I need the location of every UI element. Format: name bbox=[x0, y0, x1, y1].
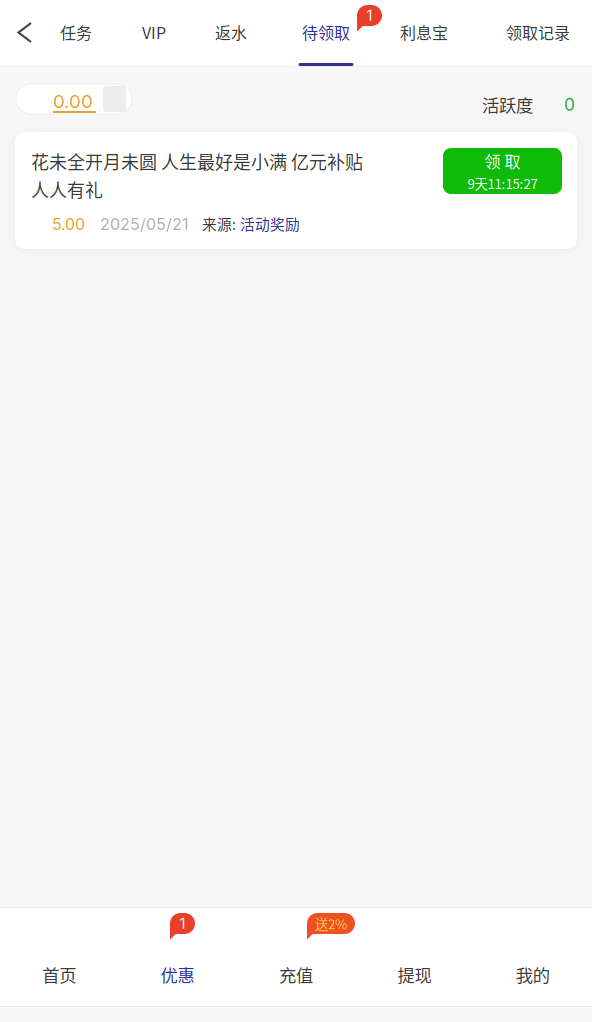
button[interactable]: 首页 bbox=[0, 907, 118, 1006]
staticText: 优惠 bbox=[161, 962, 195, 987]
button[interactable]: 利息宝 bbox=[389, 0, 459, 66]
button[interactable]: 提现 bbox=[355, 907, 474, 1006]
staticText: 人人有礼 bbox=[31, 176, 103, 202]
button[interactable]: 我的 bbox=[474, 907, 592, 1006]
staticText: 1 bbox=[366, 7, 372, 24]
button[interactable]: 返水 bbox=[201, 0, 261, 66]
staticText: 活跃度 bbox=[482, 92, 533, 117]
staticText: 领 取 bbox=[484, 149, 520, 172]
staticText: 领取记录 bbox=[506, 20, 570, 44]
staticText: 2025/05/21 bbox=[100, 214, 189, 234]
staticText: 0.00 bbox=[53, 90, 93, 113]
staticText: 1 bbox=[179, 915, 185, 932]
staticText: 来源: bbox=[202, 213, 236, 234]
staticText: 待领取 bbox=[302, 20, 350, 44]
staticText: VIP bbox=[142, 20, 166, 44]
button[interactable]: 领 取 bbox=[443, 148, 562, 194]
staticText: 返水 bbox=[215, 20, 247, 44]
button[interactable]: 优惠 bbox=[118, 907, 237, 1006]
staticText: 花未全开月未圆 人生最好是小满 亿元补贴 bbox=[31, 148, 363, 174]
button[interactable]: 充值 bbox=[237, 907, 355, 1006]
staticText: 利息宝 bbox=[400, 20, 448, 44]
staticText: 送2% bbox=[315, 914, 347, 933]
staticText: 我的 bbox=[516, 962, 550, 987]
staticText: 活动奖励 bbox=[240, 213, 300, 234]
button[interactable]: Balance bbox=[16, 84, 132, 114]
staticText: 提现 bbox=[397, 962, 431, 987]
button[interactable]: 任务 bbox=[46, 0, 106, 66]
button[interactable]: VIP bbox=[124, 0, 184, 66]
button[interactable]: 领取记录 bbox=[493, 0, 583, 66]
staticText: 9天11:15:27 bbox=[467, 173, 537, 193]
staticText: 5.00 bbox=[52, 214, 85, 234]
staticText: 0 bbox=[564, 94, 575, 115]
button[interactable]: Back bbox=[0, 0, 48, 66]
button[interactable]: 待领取 bbox=[291, 0, 361, 66]
staticText: 首页 bbox=[42, 962, 76, 987]
staticText: 充值 bbox=[279, 962, 313, 987]
staticText: 任务 bbox=[60, 20, 92, 44]
